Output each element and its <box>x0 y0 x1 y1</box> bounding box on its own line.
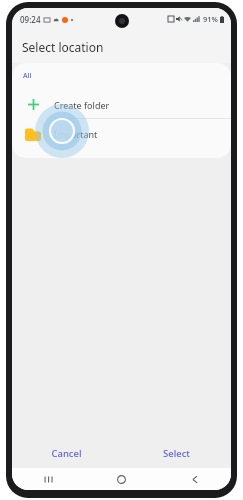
button[interactable]: Home <box>85 468 158 490</box>
button[interactable]: Back <box>158 468 231 490</box>
button[interactable]: Select <box>121 438 231 468</box>
staticText: Create folder <box>54 99 110 111</box>
staticText: Select location <box>22 39 104 55</box>
staticText: Select <box>163 447 190 460</box>
staticText: All <box>23 71 32 81</box>
staticText: Important <box>54 128 98 140</box>
button[interactable]: Recent apps <box>12 468 85 490</box>
staticText: Cancel <box>51 447 82 460</box>
button[interactable]: Cancel <box>12 438 121 468</box>
staticText: 91% <box>203 14 218 24</box>
staticText: 09:24 <box>20 14 41 25</box>
button[interactable]: Important <box>12 119 231 149</box>
button[interactable]: Create folder <box>12 91 231 118</box>
button[interactable]: All <box>23 71 32 81</box>
